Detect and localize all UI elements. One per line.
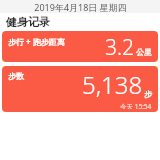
- staticText: 步行 + 跑步距离: [8, 36, 65, 47]
- staticText: 今天 15:54: [120, 102, 152, 109]
- staticText: 健身记录: [6, 15, 50, 29]
- button[interactable]: 步行 + 跑步距离: [2, 31, 158, 62]
- staticText: 步数: [8, 71, 24, 81]
- staticText: 5,138: [82, 68, 143, 101]
- staticText: 2019年4月18日 星期四: [34, 1, 127, 13]
- button[interactable]: 步数: [2, 66, 158, 112]
- staticText: 步: [144, 89, 152, 99]
- staticText: 公里: [136, 47, 152, 57]
- staticText: 3.2: [105, 33, 135, 59]
